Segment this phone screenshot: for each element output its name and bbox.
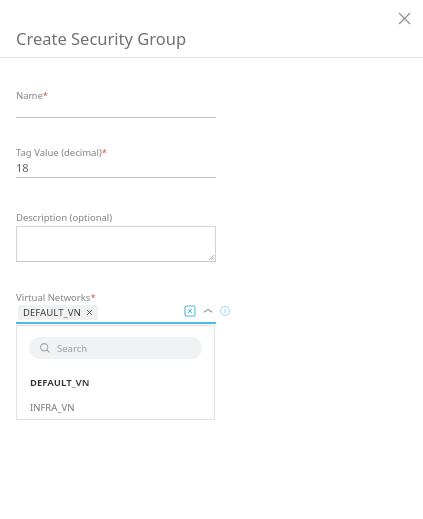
staticText: INFRA_VN bbox=[30, 401, 75, 414]
button[interactable]: Search bbox=[29, 337, 202, 359]
staticText: DEFAULT_VN bbox=[23, 306, 81, 319]
button[interactable]: INFRA_VN bbox=[16, 395, 215, 420]
staticText: 18 bbox=[16, 160, 29, 175]
staticText: Create Security Group bbox=[16, 27, 187, 49]
button[interactable]: 18 bbox=[16, 160, 216, 178]
button[interactable]: Collapse dropdown bbox=[201, 304, 215, 318]
staticText: DEFAULT_VN bbox=[30, 376, 90, 389]
button[interactable]: Close bbox=[392, 6, 416, 30]
staticText: Virtual Networks* bbox=[16, 291, 96, 304]
button[interactable]: DEFAULT_VN bbox=[18, 305, 98, 320]
button[interactable]: Clear selection bbox=[183, 304, 197, 318]
staticText: Tag Value (decimal)* bbox=[16, 146, 107, 159]
staticText: Description (optional) bbox=[16, 211, 113, 224]
button[interactable] bbox=[16, 226, 216, 262]
staticText: Search bbox=[57, 342, 88, 355]
other: Remove DEFAULT_VN bbox=[86, 309, 93, 316]
button[interactable] bbox=[16, 104, 216, 118]
button[interactable]: DEFAULT_VN bbox=[16, 370, 215, 395]
button[interactable]: More information bbox=[218, 304, 232, 318]
staticText: Name* bbox=[16, 89, 49, 102]
